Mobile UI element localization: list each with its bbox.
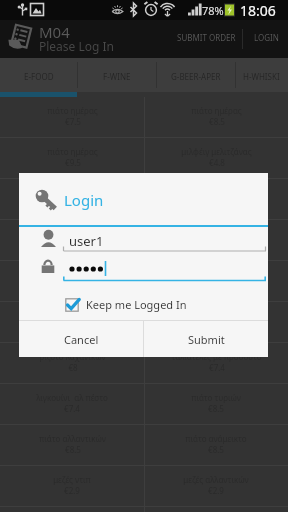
staticText: G-BEER-APER [171, 71, 221, 82]
button[interactable]: ταλιατέλες με προσούτο [144, 343, 288, 383]
staticText: €5.5 [65, 198, 81, 209]
staticText: Submit [188, 332, 225, 347]
staticText: €7.0 [64, 239, 80, 250]
button[interactable]: Cancel [19, 321, 143, 357]
button[interactable]: Submit [144, 321, 268, 357]
button[interactable]: μιλφέιγ μελιτζάνας [144, 138, 288, 178]
button[interactable]: ριζότο λαχανικών [0, 343, 144, 383]
button[interactable]: μοσχάρι λεμονάτο [144, 302, 288, 342]
staticText: Cancel [64, 332, 99, 347]
staticText: F-WINE [103, 71, 131, 82]
staticText: μπιφτέκι σπιτικό [184, 269, 248, 280]
staticText: €7.2 [208, 280, 224, 291]
button[interactable]: SUBMIT ORDER [170, 27, 243, 48]
staticText: σαλάτα εποχής [44, 187, 101, 198]
other: Order list [7, 23, 35, 51]
staticText: ζυμαρικά σπιτικά [39, 228, 105, 239]
button[interactable]: Keep me Logged In [65, 297, 187, 312]
staticText: Keep me Logged In [86, 297, 187, 312]
staticText: M04 [39, 22, 70, 42]
staticText: SUBMIT ORDER [177, 32, 236, 43]
staticText: E-FOOD [24, 71, 54, 82]
staticText: user1 [69, 232, 104, 250]
staticText: 78% [202, 3, 224, 18]
staticText: μοσχάρι λεμονάτο [182, 310, 251, 321]
button[interactable]: σαλάτα εποχής [0, 179, 144, 219]
staticText: κοτόπουλο φιλέτο [38, 269, 107, 280]
button[interactable]: κοτόπουλο φιλέτο [0, 261, 144, 301]
staticText: Login [64, 190, 104, 210]
button[interactable]: G-BEER-APER [156, 58, 235, 92]
staticText: ταλιατέλες με προσούτο [171, 351, 262, 362]
staticText: χοιρινό κρασάτο [41, 310, 104, 321]
button[interactable]: LOGIN [247, 27, 286, 48]
button[interactable]: χοιρινό κρασάτο [0, 302, 144, 342]
staticText: H-WHISKI [243, 71, 280, 82]
button[interactable]: ζυμαρικά σπιτικά [0, 220, 144, 260]
staticText: Please Log In [39, 38, 115, 54]
staticText: ριζότο λαχανικών [39, 351, 106, 362]
button[interactable]: ριζότο θαλασσινών [144, 220, 288, 260]
button[interactable]: μπιφτέκι σπιτικό [144, 261, 288, 301]
button[interactable]: σαλάτα του σεφ [144, 179, 288, 219]
staticText: €8.0 [65, 280, 81, 291]
staticText: 18:06 [240, 1, 276, 20]
staticText: LOGIN [254, 32, 279, 43]
button[interactable]: H-WHISKI [235, 58, 288, 92]
button[interactable]: πιάτο ημέρας [0, 138, 144, 178]
